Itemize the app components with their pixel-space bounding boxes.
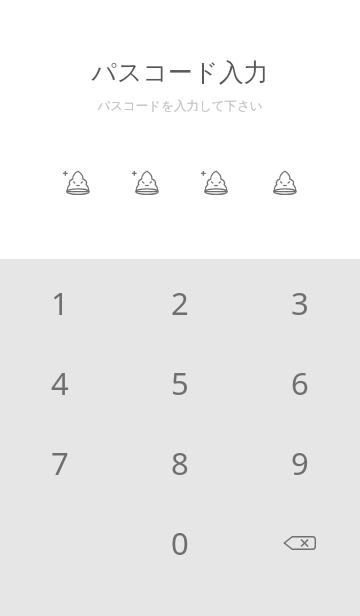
button[interactable]: 0 — [120, 503, 240, 583]
button[interactable]: 1 — [0, 263, 120, 343]
button[interactable]: 4 — [0, 343, 120, 423]
staticText: 6 — [291, 362, 309, 404]
staticText: 4 — [51, 362, 69, 404]
button[interactable]: 7 — [0, 423, 120, 503]
staticText: 3 — [291, 282, 309, 324]
staticText: 0 — [171, 522, 189, 564]
staticText: パスコード入力 — [91, 57, 269, 88]
staticText: 2 — [171, 282, 189, 324]
button[interactable]: 5 — [120, 343, 240, 423]
button[interactable]: 8 — [120, 423, 240, 503]
button[interactable]: Backspace — [240, 503, 360, 583]
staticText: パスコードを入力して下さい — [97, 98, 263, 114]
button[interactable]: 2 — [120, 263, 240, 343]
staticText: 7 — [51, 442, 69, 484]
button[interactable]: 9 — [240, 423, 360, 503]
staticText: 5 — [171, 362, 189, 404]
staticText: 9 — [291, 442, 309, 484]
button[interactable]: 6 — [240, 343, 360, 423]
staticText: 1 — [51, 282, 69, 324]
staticText: 8 — [171, 442, 189, 484]
button[interactable]: 3 — [240, 263, 360, 343]
